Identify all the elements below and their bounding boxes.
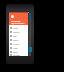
button[interactable]: Trash bbox=[9, 46, 28, 50]
staticText: Inbox bbox=[13, 27, 18, 29]
button[interactable] bbox=[27, 47, 32, 52]
staticText: All mail bbox=[13, 43, 20, 45]
staticText: Sent bbox=[13, 35, 17, 37]
button[interactable]: Spam bbox=[9, 50, 28, 54]
staticText: Settings bbox=[13, 54, 20, 56]
button[interactable]: Sent bbox=[9, 34, 28, 38]
button[interactable]: Drafts bbox=[9, 38, 28, 42]
staticText: ali@example.com bbox=[11, 22, 25, 24]
button[interactable]: Inbox bbox=[9, 26, 28, 30]
staticText: Trash bbox=[13, 47, 18, 49]
button[interactable]: Starred bbox=[9, 30, 28, 34]
button[interactable]: Settings bbox=[9, 54, 28, 56]
staticText: Starred bbox=[13, 31, 20, 33]
staticText: Spam bbox=[13, 51, 18, 53]
button[interactable]: All mail bbox=[9, 42, 28, 46]
staticText: Ali Connors bbox=[11, 20, 21, 22]
staticText: Drafts bbox=[13, 39, 19, 41]
